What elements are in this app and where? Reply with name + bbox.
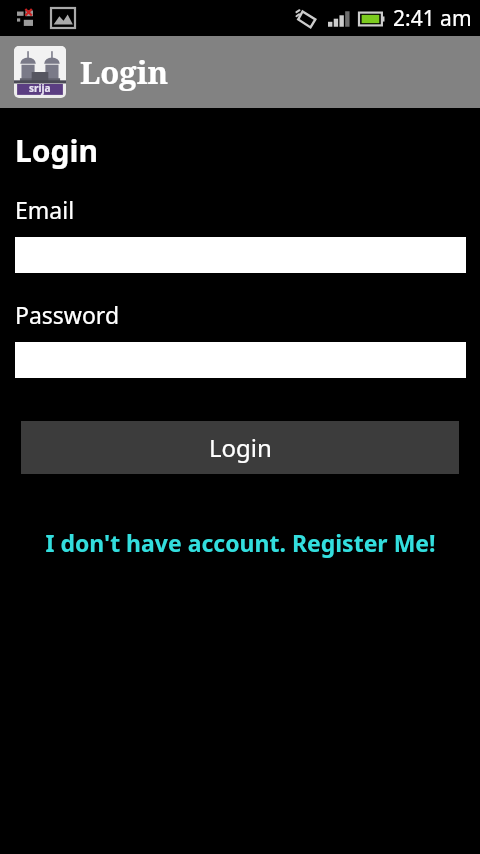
staticText: Login bbox=[15, 130, 98, 171]
other: Srija app logo bbox=[14, 46, 66, 98]
staticText: Email bbox=[15, 194, 75, 225]
button[interactable]: I don't have account. Register Me! bbox=[0, 527, 480, 558]
button[interactable]: Login bbox=[21, 421, 459, 474]
staticText: Password bbox=[15, 299, 120, 330]
staticText: srija bbox=[29, 81, 51, 95]
staticText: Login bbox=[80, 51, 169, 93]
staticText: Login bbox=[209, 431, 272, 464]
staticText: 2:41 am bbox=[393, 4, 472, 33]
staticText: I don't have account. Register Me! bbox=[45, 527, 436, 558]
